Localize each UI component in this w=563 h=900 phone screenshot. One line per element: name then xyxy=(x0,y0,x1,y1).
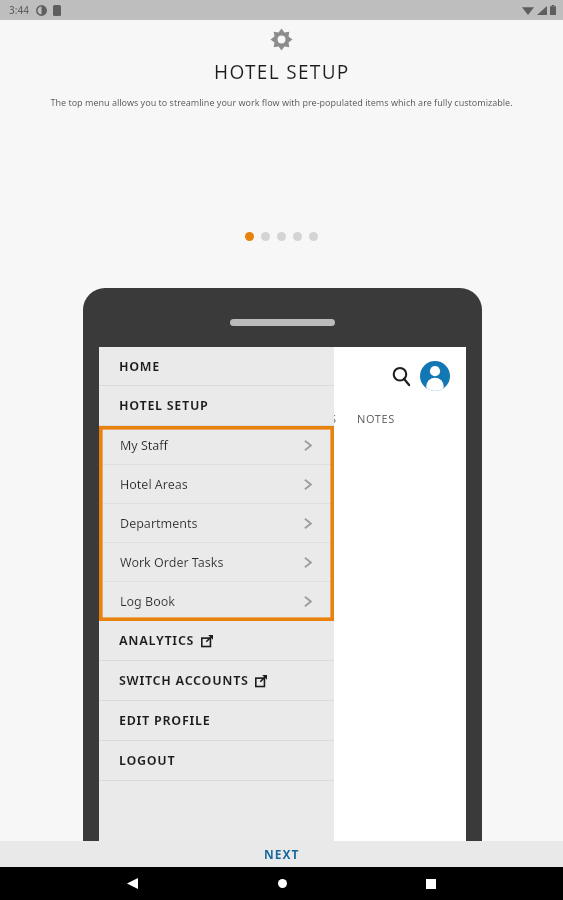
staticText: HOTEL SETUP xyxy=(214,59,350,85)
button[interactable]: Profile xyxy=(420,361,450,391)
button[interactable]: ANALYTICS xyxy=(99,621,334,661)
button[interactable]: SWITCH ACCOUNTS xyxy=(99,661,334,701)
button[interactable]: Back xyxy=(115,867,149,900)
staticText: Work Order Tasks xyxy=(120,554,224,571)
button[interactable]: HOME xyxy=(99,347,334,386)
button[interactable]: Work Order Tasks xyxy=(99,543,334,582)
button[interactable]: HOTEL SETUP xyxy=(99,386,334,426)
button[interactable]: Hotel Areas xyxy=(99,465,334,504)
staticText: HOTEL SETUP xyxy=(119,397,209,414)
button[interactable]: NEXT xyxy=(0,841,563,867)
button[interactable]: Search xyxy=(388,363,414,389)
staticText: SWITCH ACCOUNTS xyxy=(119,672,249,689)
staticText: LOGOUT xyxy=(119,752,176,769)
staticText: EDIT PROFILE xyxy=(119,712,211,729)
button[interactable]: My Staff xyxy=(99,426,334,465)
button[interactable]: LOGOUT xyxy=(99,741,334,781)
staticText: Departments xyxy=(120,515,198,532)
button[interactable]: EDIT PROFILE xyxy=(99,701,334,741)
button[interactable]: Departments xyxy=(99,504,334,543)
staticText: Hotel Areas xyxy=(120,476,188,493)
button[interactable]: Recents xyxy=(414,867,448,900)
staticText: Log Book xyxy=(120,593,175,610)
staticText: 3:44 xyxy=(9,3,29,17)
staticText: My Staff xyxy=(120,437,168,454)
staticText: ANALYTICS xyxy=(119,632,195,649)
staticText: The top menu allows you to streamline yo… xyxy=(50,96,513,108)
staticText: HOME xyxy=(119,358,161,375)
staticText: NOTES xyxy=(357,411,395,426)
button[interactable]: Log Book xyxy=(99,582,334,621)
staticText: NEXT xyxy=(264,846,300,862)
button[interactable]: Home xyxy=(265,867,299,900)
staticText: S xyxy=(330,411,337,426)
